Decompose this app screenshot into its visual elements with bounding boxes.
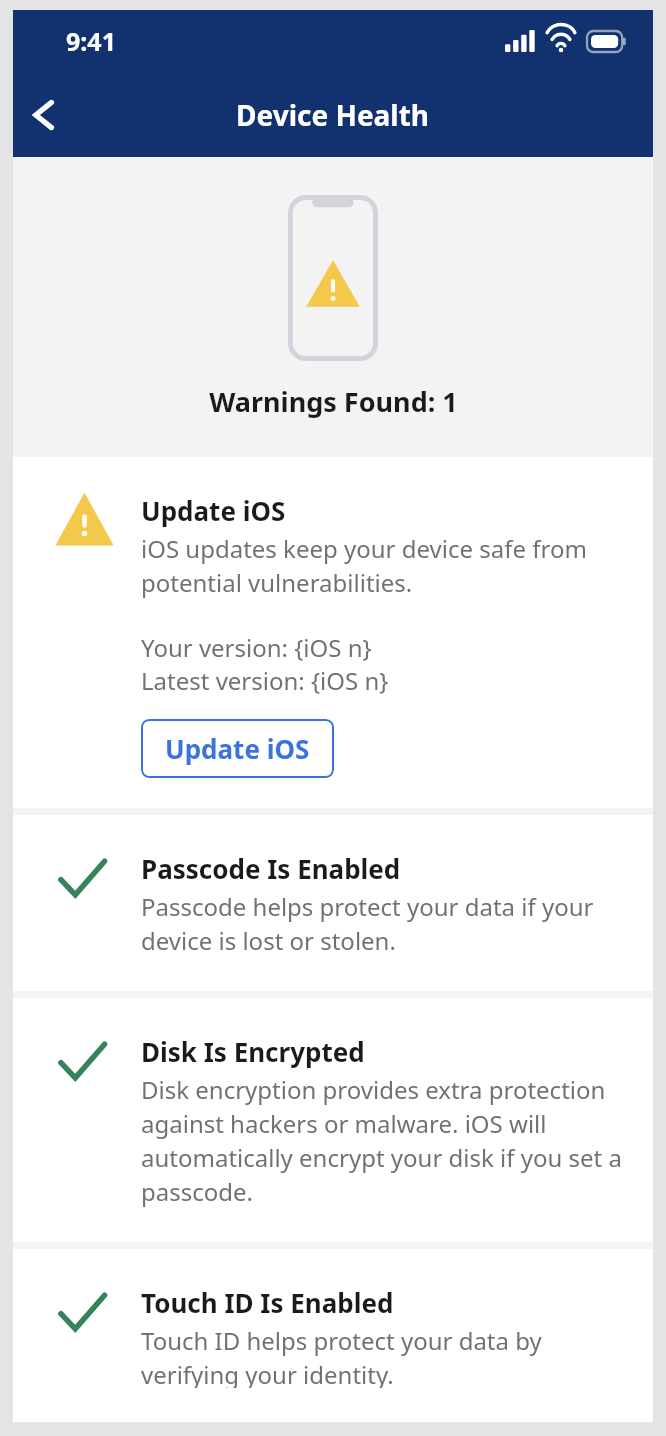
staticText: Disk Is Encrypted bbox=[141, 1034, 365, 1069]
staticText: iOS updates keep your device safe from p… bbox=[141, 532, 623, 599]
button[interactable]: Update iOS bbox=[141, 719, 334, 778]
staticText: Passcode helps protect your data if your… bbox=[141, 890, 623, 957]
button[interactable]: Passcode Is Enabled bbox=[13, 815, 653, 991]
button[interactable]: Back bbox=[13, 84, 75, 146]
staticText: Touch ID helps protect your data by veri… bbox=[141, 1324, 623, 1388]
button[interactable]: Disk Is Encrypted bbox=[13, 998, 653, 1242]
staticText: Your version: {iOS n} bbox=[141, 631, 372, 664]
staticText: Latest version: {iOS n} bbox=[141, 664, 389, 697]
staticText: Device Health bbox=[236, 96, 430, 134]
staticText: Update iOS bbox=[165, 731, 310, 766]
staticText: 9:41 bbox=[66, 24, 116, 58]
staticText: Update iOS bbox=[141, 493, 286, 528]
staticText: Touch ID Is Enabled bbox=[141, 1285, 394, 1320]
staticText: Disk encryption provides extra protectio… bbox=[141, 1073, 623, 1208]
button[interactable]: Update iOS bbox=[13, 457, 653, 808]
button[interactable]: Touch ID Is Enabled bbox=[13, 1249, 653, 1422]
staticText: Warnings Found: 1 bbox=[209, 383, 458, 420]
staticText: Passcode Is Enabled bbox=[141, 851, 401, 886]
